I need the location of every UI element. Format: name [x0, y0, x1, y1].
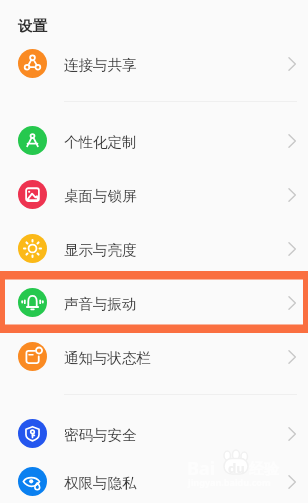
staticText: 权限与隐私: [64, 474, 276, 492]
button[interactable]: 个性化定制: [0, 113, 308, 167]
staticText: 个性化定制: [64, 133, 276, 151]
button[interactable]: 显示与亮度: [0, 221, 308, 275]
button[interactable]: 权限与隐私: [0, 460, 308, 503]
staticText: 设置: [18, 17, 47, 35]
staticText: 连接与共享: [64, 56, 276, 74]
staticText: 通知与状态栏: [64, 349, 276, 367]
staticText: du: [228, 459, 245, 477]
button[interactable]: 通知与状态栏: [0, 329, 308, 383]
staticText: 桌面与锁屏: [64, 187, 276, 205]
staticText: 声音与振动: [64, 295, 276, 313]
button[interactable]: 桌面与锁屏: [0, 167, 308, 221]
button[interactable]: 连接与共享: [0, 36, 308, 90]
staticText: 显示与亮度: [64, 241, 276, 259]
button[interactable]: 声音与振动: [0, 275, 308, 329]
staticText: 密码与安全: [64, 426, 276, 444]
button[interactable]: 密码与安全: [0, 406, 308, 460]
